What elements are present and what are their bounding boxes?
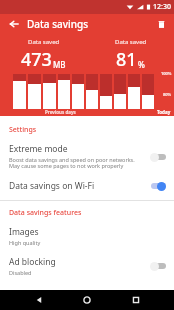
staticText: Boost data savings and speed on poor net… bbox=[9, 156, 135, 170]
staticText: Data savings bbox=[27, 17, 89, 31]
staticText: Today bbox=[157, 109, 171, 115]
button[interactable]: Off bbox=[148, 151, 168, 163]
staticText: % bbox=[138, 59, 145, 70]
staticText: Data saved bbox=[28, 38, 60, 46]
button[interactable]: Delete bbox=[152, 15, 170, 33]
staticText: High quality bbox=[9, 239, 41, 246]
staticText: 100% bbox=[161, 71, 172, 76]
button[interactable]: Back bbox=[5, 15, 23, 33]
staticText: Data savings on Wi-Fi bbox=[9, 180, 95, 192]
button[interactable]: Off bbox=[148, 260, 168, 272]
staticText: Ad blocking bbox=[9, 256, 56, 268]
staticText: Extreme mode bbox=[9, 143, 68, 155]
staticText: Data savings features bbox=[9, 208, 82, 218]
button[interactable]: Home bbox=[77, 290, 97, 310]
staticText: 12:30 bbox=[153, 2, 171, 12]
staticText: Previous days bbox=[45, 109, 76, 115]
staticText: Disabled bbox=[9, 269, 32, 276]
staticText: MB bbox=[53, 59, 66, 70]
button[interactable]: On bbox=[148, 180, 168, 192]
staticText: Data saved bbox=[115, 38, 147, 46]
staticText: 81 bbox=[116, 47, 137, 72]
button[interactable]: Extreme mode bbox=[0, 137, 174, 174]
button[interactable]: Recents bbox=[126, 290, 146, 310]
staticText: Images bbox=[9, 226, 39, 238]
button[interactable]: Back bbox=[29, 290, 49, 310]
staticText: 80% bbox=[163, 92, 172, 97]
staticText: 473 bbox=[21, 47, 52, 72]
button[interactable]: Data savings on Wi-Fi bbox=[0, 174, 174, 196]
button[interactable]: Images bbox=[0, 220, 174, 250]
button[interactable]: Ad blocking bbox=[0, 250, 174, 280]
staticText: Settings bbox=[9, 125, 37, 135]
